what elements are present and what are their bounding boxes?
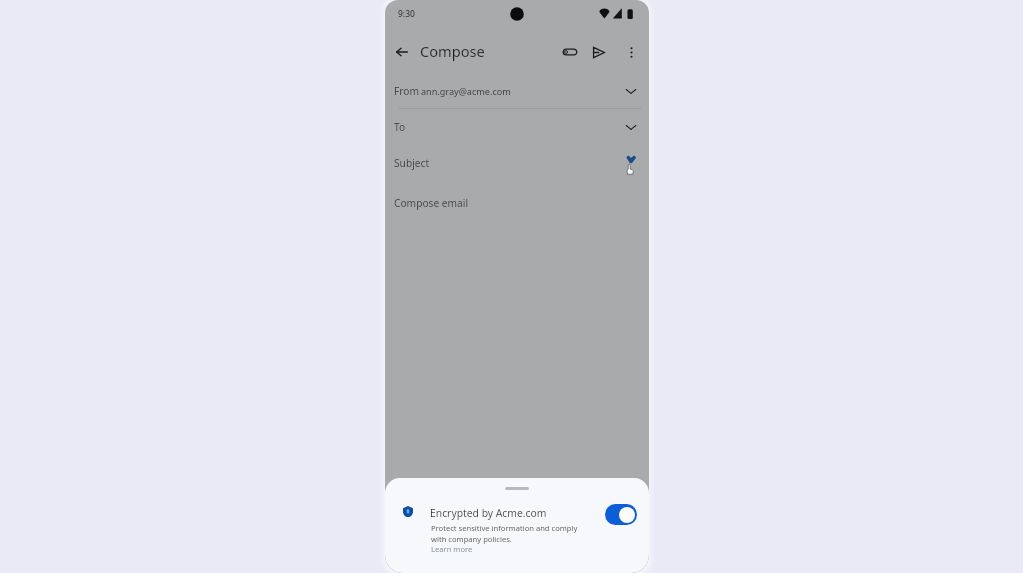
staticText: Learn more: [431, 544, 473, 554]
button[interactable]: Back: [391, 41, 413, 63]
staticText: To: [394, 120, 406, 134]
staticText: ann.gray@acme.com: [421, 85, 511, 97]
button[interactable]: Learn more: [431, 544, 473, 554]
button[interactable]: From: [385, 79, 649, 103]
staticText: Encrypted by Acme.com: [430, 506, 547, 520]
staticText: Compose email: [394, 196, 469, 210]
button[interactable]: Encryption toggle: [605, 504, 637, 525]
staticText: Compose: [420, 41, 485, 61]
button[interactable]: Send: [587, 41, 609, 63]
button[interactable]: Attach file: [559, 41, 581, 63]
staticText: 9:30: [398, 8, 415, 20]
staticText: Protect sensitive information and comply…: [431, 523, 586, 544]
button[interactable]: Compose email: [385, 191, 649, 215]
staticText: Subject: [394, 156, 430, 170]
button[interactable]: More options: [620, 41, 642, 63]
staticText: From: [394, 84, 419, 98]
button[interactable]: To: [385, 115, 649, 139]
button[interactable]: Subject: [385, 151, 649, 175]
